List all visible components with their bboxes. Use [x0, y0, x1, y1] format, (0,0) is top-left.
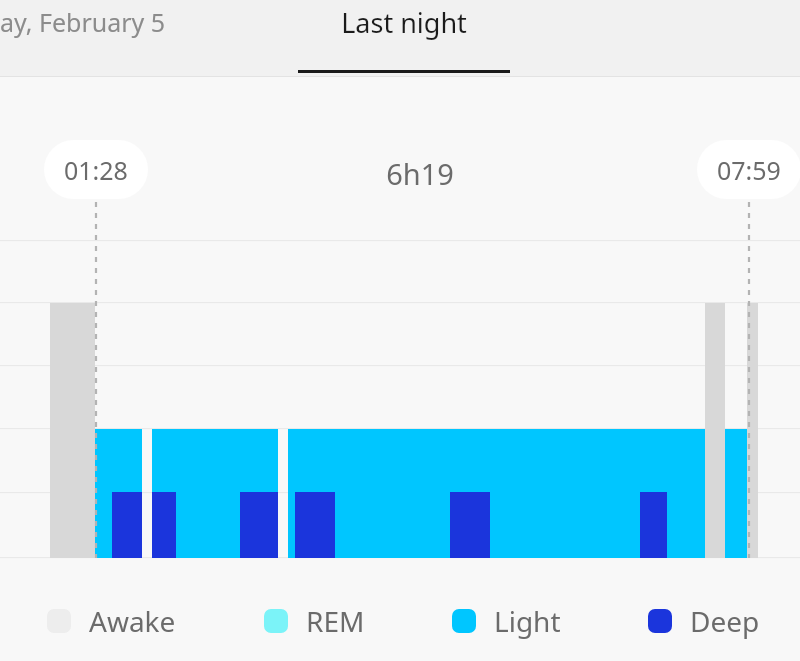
- staticText: REM: [306, 602, 365, 640]
- button[interactable]: Awake: [47, 602, 176, 640]
- staticText: 6h19: [370, 154, 470, 193]
- button[interactable]: Light: [452, 602, 561, 640]
- staticText: Awake: [89, 602, 176, 640]
- button[interactable]: 07:59: [697, 140, 800, 199]
- button[interactable]: ay, February 5: [0, 0, 210, 77]
- staticText: Deep: [690, 602, 760, 640]
- staticText: 07:59: [717, 153, 781, 187]
- button[interactable]: Last night: [298, 0, 510, 77]
- staticText: Last night: [298, 4, 510, 41]
- button[interactable]: Deep: [648, 602, 760, 640]
- staticText: Light: [494, 602, 561, 640]
- staticText: 01:28: [64, 153, 128, 187]
- staticText: ay, February 5: [0, 5, 166, 39]
- button[interactable]: 01:28: [44, 140, 148, 199]
- button[interactable]: REM: [264, 602, 365, 640]
